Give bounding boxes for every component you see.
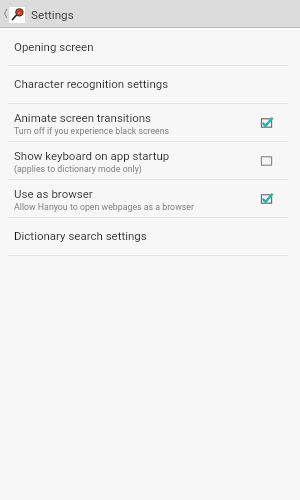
staticText: (applies to dictionary mode only) xyxy=(14,164,142,174)
button[interactable]: Back xyxy=(0,2,11,24)
staticText: Opening screen xyxy=(14,40,94,53)
button[interactable]: Use as browser xyxy=(0,180,300,218)
staticText: Character recognition settings xyxy=(14,77,169,90)
staticText: Settings xyxy=(31,8,74,22)
staticText: Dictionary search settings xyxy=(14,229,147,242)
staticText: Show keyboard on app startup xyxy=(14,149,170,162)
button[interactable]: Opening screen xyxy=(0,30,300,66)
staticText: Animate screen transitions xyxy=(14,111,152,124)
button[interactable]: Show keyboard on app startup xyxy=(255,150,277,172)
button[interactable]: Dictionary search settings xyxy=(0,218,300,256)
button[interactable]: Use as browser xyxy=(255,188,277,210)
button[interactable]: Animate screen transitions xyxy=(0,104,300,142)
staticText: Allow Hanyou to open webpages as a brows… xyxy=(14,202,194,212)
button[interactable]: Character recognition settings xyxy=(0,66,300,104)
staticText: Use as browser xyxy=(14,187,93,200)
staticText: Turn off if you experience black screens xyxy=(14,126,170,136)
button[interactable]: Show keyboard on app startup xyxy=(0,142,300,180)
button[interactable]: Animate screen transitions xyxy=(255,112,277,134)
button[interactable]: Hanyou xyxy=(9,7,25,23)
